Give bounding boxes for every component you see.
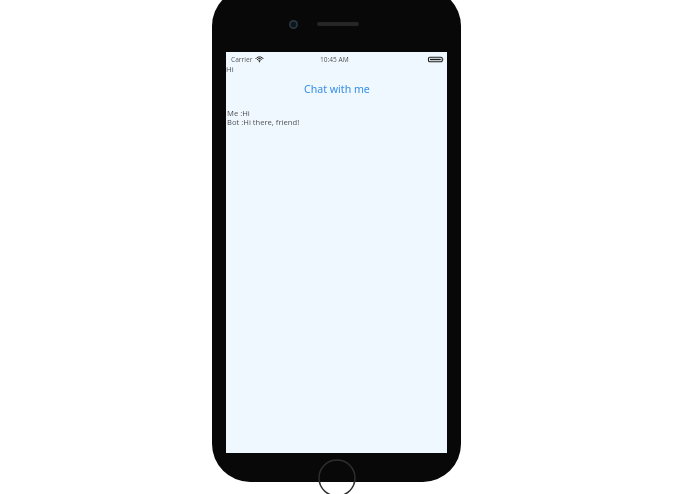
staticText: Bot :Hi there, friend! (227, 117, 300, 127)
staticText: 10:45 AM (320, 55, 349, 64)
other: Home (318, 459, 356, 494)
other: Wi-Fi signal (256, 56, 263, 62)
staticText: Hi (226, 64, 234, 74)
other: Battery full (428, 56, 444, 63)
staticText: Carrier (231, 55, 253, 64)
button[interactable]: Chat with me (226, 80, 447, 97)
staticText: Me :Hi (227, 108, 250, 118)
staticText: Chat with me (304, 82, 370, 96)
